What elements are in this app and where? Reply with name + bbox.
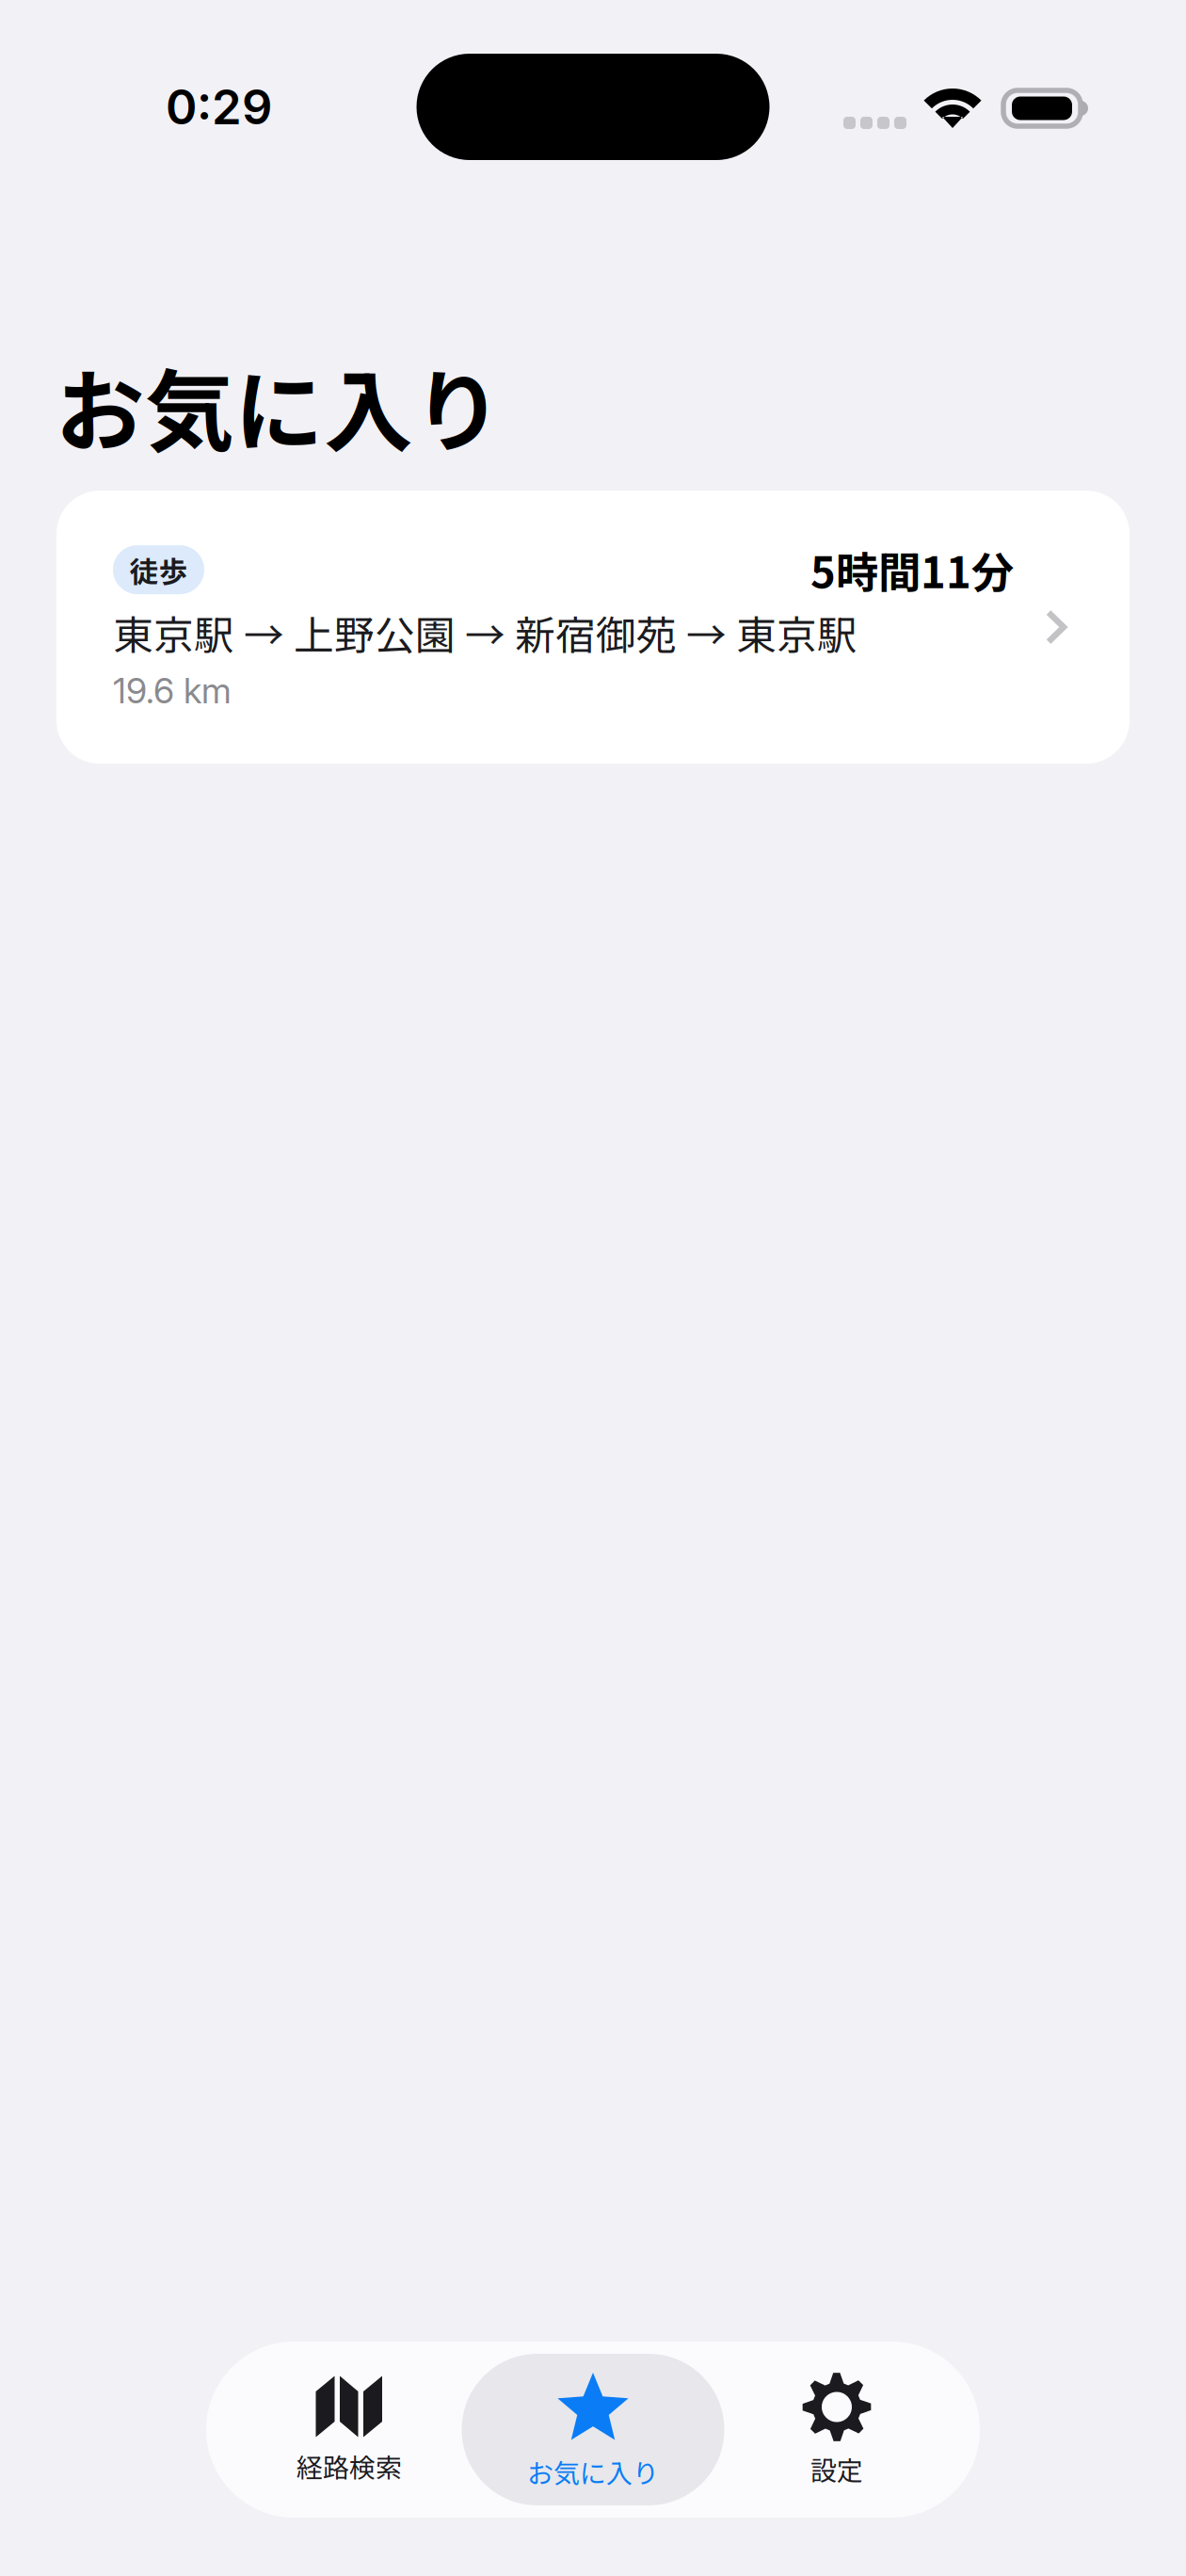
staticText: 経路検索 — [296, 2447, 402, 2485]
staticText: 東京駅 → 上野公園 → 新宿御苑 → 東京駅 — [113, 604, 857, 662]
button[interactable]: お気に入り — [471, 2354, 715, 2505]
staticText: 設定 — [810, 2450, 863, 2488]
staticText: お気に入り — [527, 2453, 659, 2491]
staticText: 19.6 km — [113, 669, 232, 712]
staticText: 徒歩 — [129, 549, 188, 591]
button[interactable]: 設定 — [715, 2354, 959, 2505]
staticText: 5時間11分 — [810, 539, 1014, 601]
button[interactable]: 経路検索 — [227, 2354, 471, 2505]
staticText: お気に入り — [56, 341, 503, 470]
staticText: 0:29 — [166, 78, 272, 136]
button[interactable]: 徒歩 — [56, 491, 1130, 764]
